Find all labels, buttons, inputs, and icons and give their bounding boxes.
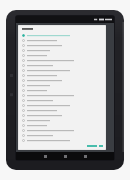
- button[interactable]: [21, 103, 103, 108]
- button[interactable]: [21, 118, 103, 123]
- button[interactable]: [21, 33, 103, 38]
- button[interactable]: Recents: [82, 153, 89, 160]
- button[interactable]: [21, 73, 103, 78]
- button[interactable]: [21, 43, 103, 48]
- button[interactable]: [21, 133, 103, 138]
- button[interactable]: [21, 113, 103, 118]
- button[interactable]: [21, 128, 103, 133]
- button[interactable]: [21, 58, 103, 63]
- button[interactable]: [21, 93, 103, 98]
- button[interactable]: Home: [62, 153, 69, 160]
- button[interactable]: Cancel: [87, 144, 97, 148]
- button[interactable]: [21, 63, 103, 68]
- button[interactable]: [21, 83, 103, 88]
- button[interactable]: OK: [99, 144, 103, 148]
- button[interactable]: [21, 78, 103, 83]
- button[interactable]: [21, 38, 103, 43]
- button[interactable]: [21, 138, 103, 143]
- button[interactable]: [21, 88, 103, 93]
- button[interactable]: [21, 53, 103, 58]
- button[interactable]: Back: [42, 153, 49, 160]
- button[interactable]: [21, 48, 103, 53]
- button[interactable]: [21, 123, 103, 128]
- button[interactable]: [21, 98, 103, 103]
- button[interactable]: [21, 108, 103, 113]
- button[interactable]: [21, 68, 103, 73]
